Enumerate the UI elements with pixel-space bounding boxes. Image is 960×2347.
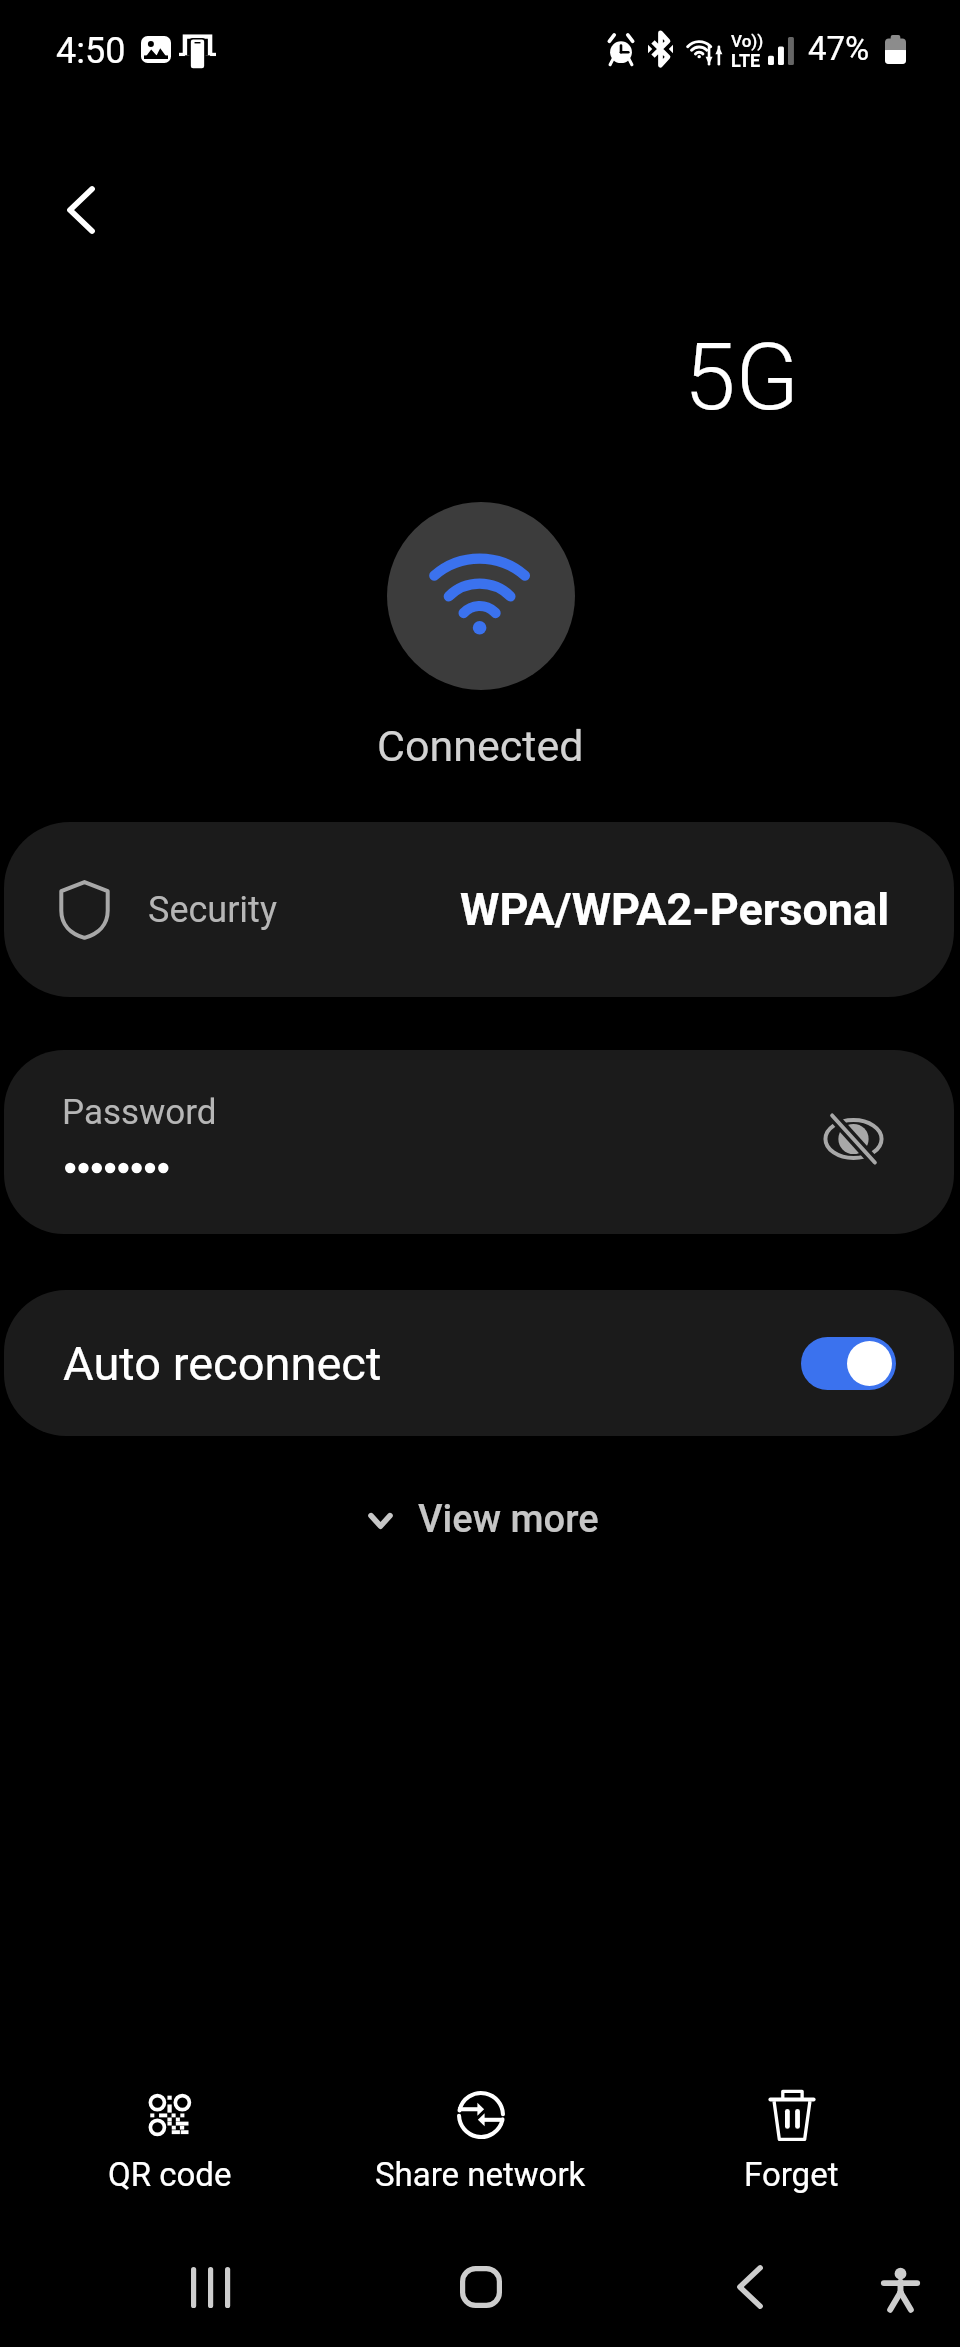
button[interactable]: Navigate up <box>45 174 117 246</box>
staticText: LTE <box>731 50 761 71</box>
staticText: QR code <box>108 2155 232 2194</box>
button[interactable]: Recent apps <box>174 2251 246 2323</box>
staticText: Forget <box>744 2155 839 2194</box>
staticText: Vo)) <box>731 31 764 51</box>
button[interactable]: View more <box>348 1485 619 1554</box>
button[interactable]: QR code <box>20 2069 320 2209</box>
staticText: Share network <box>375 2155 586 2194</box>
button[interactable]: Share network <box>330 2067 630 2207</box>
button[interactable]: Show password <box>817 1103 889 1175</box>
staticText: Password <box>62 1092 217 1133</box>
button[interactable]: Security <box>4 822 954 997</box>
button[interactable]: Password <box>4 1050 954 1234</box>
button[interactable]: Back <box>714 2251 786 2323</box>
button[interactable]: Auto reconnect <box>4 1290 954 1436</box>
staticText: Connected <box>377 721 584 771</box>
staticText: 47% <box>808 29 870 68</box>
staticText: Auto reconnect <box>63 1336 382 1391</box>
staticText: 5G <box>684 323 800 432</box>
staticText: WPA/WPA2-Personal <box>460 883 890 936</box>
button[interactable]: Home <box>445 2251 517 2323</box>
staticText: Security <box>148 889 277 931</box>
button[interactable]: Forget <box>641 2065 941 2205</box>
button[interactable]: Auto reconnect <box>801 1337 896 1390</box>
staticText: 4:50 <box>56 30 126 72</box>
button[interactable]: Accessibility <box>864 2254 936 2326</box>
staticText: View more <box>418 1497 599 1542</box>
